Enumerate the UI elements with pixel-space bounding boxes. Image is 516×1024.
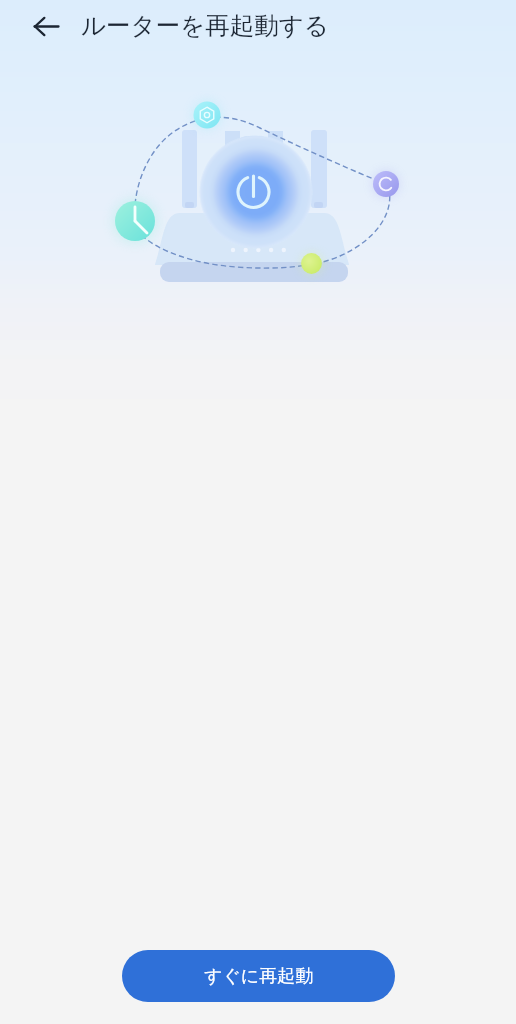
staticText: ルーターを再起動する xyxy=(81,10,329,41)
staticText: すぐに再起動 xyxy=(204,965,314,988)
button[interactable]: すぐに再起動 xyxy=(122,950,395,1002)
button[interactable]: Back xyxy=(20,0,72,52)
